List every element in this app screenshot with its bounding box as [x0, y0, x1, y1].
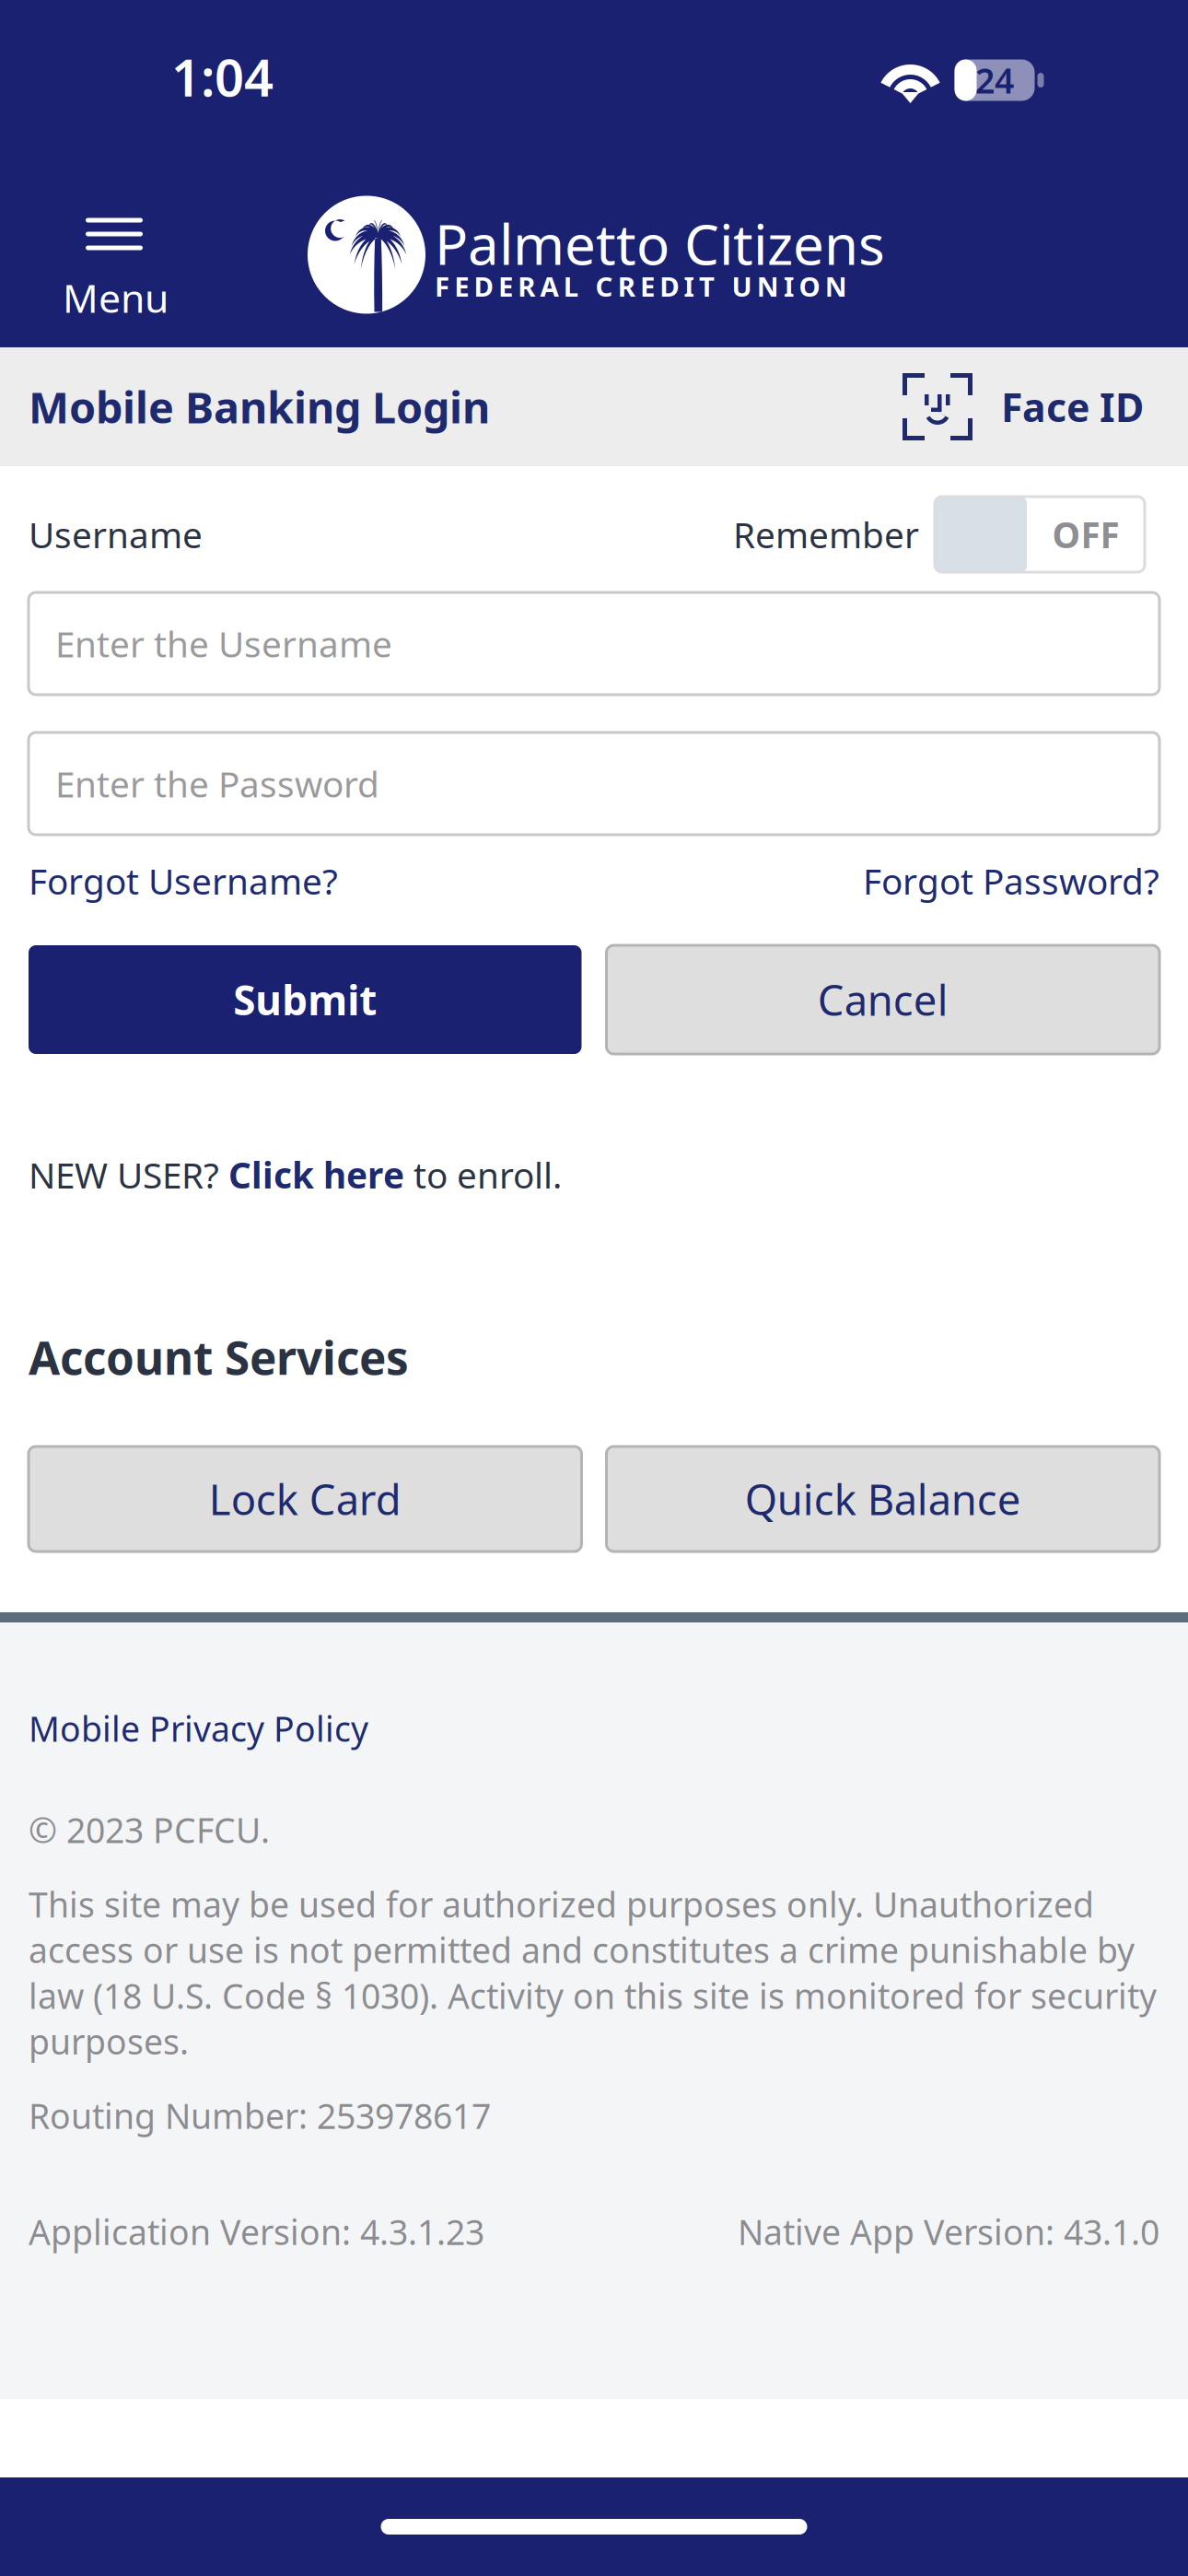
staticText: Quick Balance	[745, 1471, 1021, 1527]
staticText: Submit	[233, 973, 377, 1027]
button[interactable]: Quick Balance	[606, 1446, 1159, 1551]
staticText: Mobile Privacy Policy	[29, 1706, 368, 1751]
staticText: 1:04	[171, 42, 274, 111]
staticText: 24	[975, 57, 1014, 103]
staticText: Mobile Banking Login	[29, 378, 490, 435]
button[interactable]: Mobile Privacy Policy	[29, 1706, 368, 1751]
staticText: Account Services	[29, 1327, 409, 1387]
button[interactable]: Cancel	[606, 945, 1159, 1054]
button[interactable]: Menu	[0, 134, 182, 351]
staticText: NEW USER?	[29, 1151, 228, 1198]
staticText: Forgot Username?	[29, 857, 338, 904]
staticText: Enter the Username	[55, 620, 392, 667]
button[interactable]: Face ID	[903, 373, 1144, 440]
staticText: Forgot Password?	[863, 857, 1159, 904]
staticText: Lock Card	[209, 1471, 401, 1527]
button[interactable]: Forgot Password?	[863, 857, 1159, 904]
button[interactable]: Remember username, off	[935, 497, 1145, 572]
button[interactable]: Click here	[228, 1151, 404, 1198]
staticText: Menu	[63, 271, 169, 324]
staticText: OFF	[1052, 511, 1119, 558]
staticText: FEDERAL CREDIT UNION	[435, 268, 847, 304]
staticText: Application Version: 4.3.1.23	[29, 2209, 484, 2255]
button[interactable]: Submit	[29, 945, 582, 1054]
staticText: to enroll.	[404, 1151, 562, 1198]
button[interactable]: Lock Card	[29, 1446, 582, 1551]
staticText: Routing Number: 253978617	[29, 2093, 491, 2138]
staticText: Face ID	[1001, 381, 1144, 433]
button[interactable]: Enter the Username	[29, 592, 1159, 695]
staticText: Cancel	[818, 972, 948, 1027]
button[interactable]: Forgot Username?	[29, 857, 338, 904]
staticText: Remember	[733, 511, 919, 558]
staticText: © 2023 PCFCU.	[29, 1807, 270, 1853]
staticText: This site may be used for authorized pur…	[29, 1881, 1157, 2064]
staticText: Click here	[228, 1151, 404, 1198]
button[interactable]: Enter the Password	[29, 732, 1159, 835]
staticText: Native App Version: 43.1.0	[738, 2209, 1159, 2255]
staticText: Username	[29, 511, 203, 558]
staticText: Enter the Password	[55, 760, 379, 807]
staticText: Palmetto Citizens	[435, 207, 885, 280]
